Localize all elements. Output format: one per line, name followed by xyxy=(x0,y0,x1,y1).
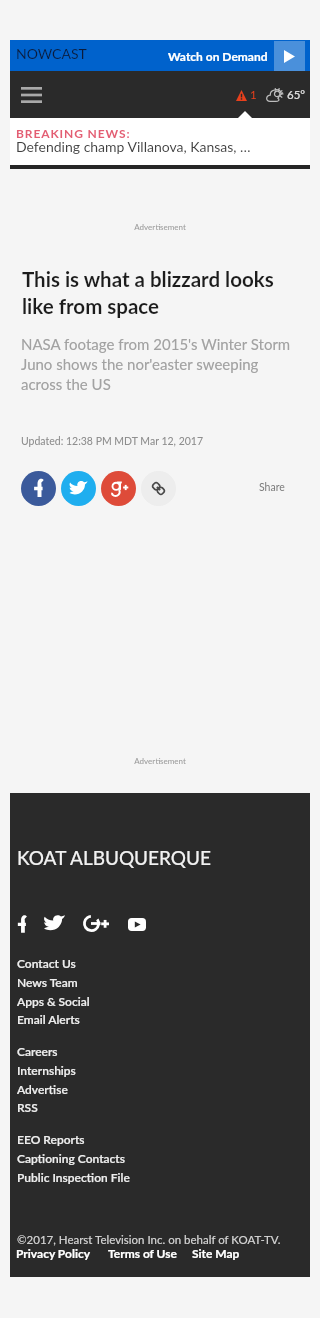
button[interactable]: Google Plus xyxy=(80,913,112,933)
staticText: Site Map xyxy=(192,1246,240,1260)
button[interactable]: BREAKING NEWS: xyxy=(10,118,310,165)
button[interactable]: Internships xyxy=(16,1061,196,1079)
button[interactable]: Public Inspection File xyxy=(16,1168,196,1186)
staticText: News Team xyxy=(17,975,78,989)
button[interactable]: Careers xyxy=(16,1042,196,1060)
staticText: This is what a blizzard looks like from … xyxy=(22,267,288,319)
staticText: Defending champ Villanova, Kansas, … xyxy=(16,138,251,155)
staticText: Watch on Demand xyxy=(168,49,268,63)
button[interactable]: Weather alerts xyxy=(236,88,257,102)
button[interactable]: YouTube xyxy=(125,914,149,934)
button[interactable]: Captioning Contacts xyxy=(16,1149,196,1167)
button[interactable]: Twitter xyxy=(41,913,67,933)
button[interactable]: Email Alerts xyxy=(16,1010,196,1028)
button[interactable]: RSS xyxy=(16,1098,196,1116)
button[interactable]: EEO Reports xyxy=(16,1130,196,1148)
staticText: EEO Reports xyxy=(17,1132,85,1146)
button[interactable]: Apps & Social xyxy=(16,992,196,1010)
staticText: Privacy Policy xyxy=(16,1246,91,1260)
button[interactable]: Contact Us xyxy=(16,954,196,972)
staticText: RSS xyxy=(17,1100,38,1114)
staticText: Internships xyxy=(17,1063,76,1077)
staticText: Advertise xyxy=(17,1082,68,1096)
staticText: NASA footage from 2015's Winter Storm Ju… xyxy=(21,335,301,393)
staticText: KOAT ALBUQUERQUE xyxy=(17,846,211,869)
button[interactable]: Share on Google Plus xyxy=(101,471,136,506)
button[interactable]: NOWCAST xyxy=(10,40,310,71)
staticText: 65° xyxy=(287,88,306,102)
staticText: Updated: 12:38 PM MDT Mar 12, 2017 xyxy=(21,435,204,448)
staticText: Advertisement xyxy=(0,222,320,232)
staticText: ©2017, Hearst Television Inc. on behalf … xyxy=(17,1233,281,1247)
button[interactable]: Weather, 65 degrees xyxy=(267,88,306,102)
staticText: Advertisement xyxy=(0,756,320,766)
button[interactable]: Advertise xyxy=(16,1080,196,1098)
button[interactable]: Copy link xyxy=(141,471,176,506)
button[interactable]: Site Map xyxy=(191,1246,241,1260)
staticText: Contact Us xyxy=(17,956,76,970)
button[interactable]: Terms of Use xyxy=(107,1246,178,1260)
staticText: Terms of Use xyxy=(108,1246,177,1260)
button[interactable]: Share on Facebook xyxy=(21,471,56,506)
staticText: Careers xyxy=(17,1044,58,1058)
button[interactable]: Play live video xyxy=(274,41,305,71)
staticText: Public Inspection File xyxy=(17,1170,130,1184)
staticText: Share xyxy=(259,481,285,494)
button[interactable]: Menu xyxy=(10,74,52,116)
button[interactable]: Privacy Policy xyxy=(15,1246,92,1260)
button[interactable]: Share on Twitter xyxy=(61,471,96,506)
staticText: NOWCAST xyxy=(16,45,87,62)
staticText: 1 xyxy=(250,88,257,102)
staticText: Email Alerts xyxy=(17,1012,80,1026)
staticText: Apps & Social xyxy=(17,994,90,1008)
button[interactable]: Facebook xyxy=(11,914,33,934)
button[interactable]: News Team xyxy=(16,973,196,991)
staticText: Captioning Contacts xyxy=(17,1151,125,1165)
staticText: BREAKING NEWS: xyxy=(16,126,131,140)
